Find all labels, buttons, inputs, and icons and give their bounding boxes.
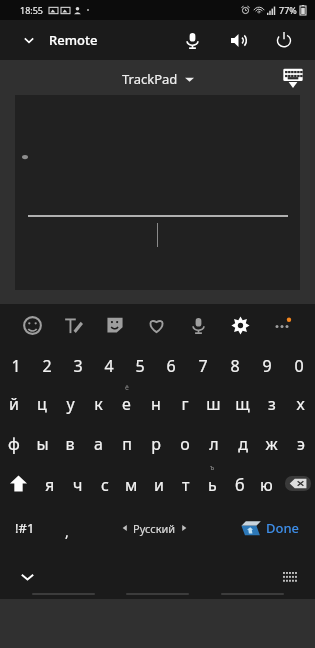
staticText: ф <box>8 433 20 455</box>
button[interactable]: Voice input <box>175 23 209 57</box>
button[interactable]: э <box>286 422 315 462</box>
button[interactable]: 5 <box>124 346 155 382</box>
button[interactable]: Power <box>267 23 301 57</box>
button[interactable]: д <box>228 422 257 462</box>
button[interactable]: л <box>199 422 228 462</box>
button[interactable]: ъ <box>199 462 226 504</box>
staticText: ц <box>37 393 47 415</box>
staticText: 9 <box>262 355 272 377</box>
staticText: у <box>66 393 75 415</box>
button[interactable]: 1 <box>0 346 31 382</box>
staticText: и <box>154 474 164 496</box>
staticText: 4 <box>104 355 114 377</box>
button[interactable]: ш <box>199 382 228 422</box>
staticText: л <box>209 433 219 455</box>
button[interactable]: 4 <box>93 346 124 382</box>
button[interactable]: ю <box>253 462 280 504</box>
button[interactable]: ц <box>28 382 56 422</box>
button[interactable]: Right click <box>157 218 300 290</box>
button[interactable]: GIF <box>135 304 177 346</box>
button[interactable]: Backspace <box>280 462 315 504</box>
button[interactable]: ж <box>257 422 286 462</box>
staticText: ъ <box>210 463 215 473</box>
button[interactable]: Hide keyboard <box>10 559 44 593</box>
button[interactable]: ф <box>0 422 28 462</box>
button[interactable]: !#1 <box>0 504 49 552</box>
button[interactable]: Switch keyboard <box>273 559 307 593</box>
button[interactable]: Emoji <box>12 304 53 346</box>
button[interactable]: в <box>56 422 84 462</box>
staticText: 77% <box>279 4 297 16</box>
button[interactable]: 7 <box>187 346 219 382</box>
staticText: 18:55 <box>20 4 44 16</box>
button[interactable]: Shift <box>0 462 36 504</box>
staticText: з <box>268 393 276 415</box>
button[interactable]: п <box>112 422 141 462</box>
staticText: н <box>151 393 161 415</box>
staticText: в <box>65 433 75 455</box>
button[interactable]: к <box>84 382 112 422</box>
staticText: о <box>180 433 190 455</box>
button[interactable]: Done <box>225 504 315 552</box>
button[interactable]: 9 <box>251 346 283 382</box>
button[interactable]: ч <box>64 462 91 504</box>
staticText: 5 <box>135 355 145 377</box>
button[interactable]: Remote <box>22 31 98 49</box>
button[interactable]: й <box>0 382 28 422</box>
staticText: , <box>65 522 69 541</box>
button[interactable]: Voice <box>177 304 219 346</box>
button[interactable]: TrackPad <box>122 70 194 88</box>
button[interactable]: щ <box>228 382 257 422</box>
button[interactable]: Volume <box>221 23 255 57</box>
button[interactable]: 3 <box>62 346 93 382</box>
staticText: й <box>9 393 19 415</box>
staticText: м <box>125 474 138 496</box>
button[interactable]: т <box>172 462 199 504</box>
button[interactable]: о <box>170 422 199 462</box>
button[interactable]: ё <box>112 382 141 422</box>
button[interactable]: 8 <box>219 346 251 382</box>
button[interactable]: с <box>91 462 118 504</box>
staticText: 0 <box>294 355 304 377</box>
button[interactable]: м <box>118 462 145 504</box>
staticText: я <box>45 474 55 496</box>
staticText: 2 <box>42 355 52 377</box>
button[interactable]: 0 <box>283 346 315 382</box>
button[interactable]: х <box>286 382 315 422</box>
staticText: ё <box>125 383 129 393</box>
button[interactable]: Show keyboard <box>279 64 307 92</box>
staticText: 8 <box>230 355 240 377</box>
staticText: р <box>151 433 161 455</box>
button[interactable]: Text edit <box>53 304 94 346</box>
staticText: ш <box>206 393 221 415</box>
button[interactable]: з <box>257 382 286 422</box>
staticText: ы <box>36 433 49 455</box>
staticText: 7 <box>198 355 208 377</box>
button[interactable]: More <box>261 304 303 346</box>
button[interactable]: г <box>170 382 199 422</box>
button[interactable]: а <box>84 422 112 462</box>
button[interactable]: Space, Russian <box>84 504 225 552</box>
button[interactable]: 2 <box>31 346 62 382</box>
button[interactable]: 6 <box>155 346 187 382</box>
button[interactable]: б <box>226 462 253 504</box>
staticText: Done <box>266 519 300 537</box>
staticText: е <box>122 393 131 415</box>
button[interactable]: и <box>145 462 172 504</box>
button[interactable]: Settings <box>219 304 261 346</box>
staticText: а <box>94 433 103 455</box>
staticText: ж <box>265 433 278 455</box>
staticText: 6 <box>166 355 176 377</box>
button[interactable]: р <box>141 422 170 462</box>
button[interactable]: Track pad <box>15 95 300 290</box>
staticText: г <box>181 393 189 415</box>
button[interactable]: я <box>36 462 64 504</box>
button[interactable]: ы <box>28 422 56 462</box>
button[interactable]: у <box>56 382 84 422</box>
button[interactable]: Stickers <box>94 304 135 346</box>
staticText: ь <box>208 474 217 496</box>
button[interactable]: н <box>141 382 170 422</box>
staticText: п <box>122 433 132 455</box>
button[interactable]: , <box>49 504 84 552</box>
